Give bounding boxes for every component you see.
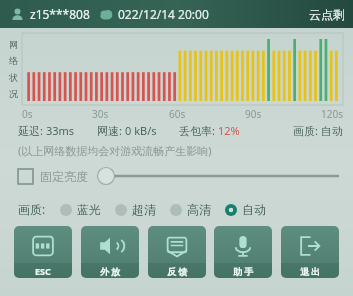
button[interactable]: 固定亮度 bbox=[18, 169, 88, 184]
staticText: 0 kB/s bbox=[125, 123, 157, 138]
staticText: 固定亮度 bbox=[40, 169, 88, 184]
staticText: 33ms bbox=[46, 123, 75, 138]
staticText: 0s bbox=[22, 107, 33, 121]
staticText: 延迟: bbox=[18, 123, 46, 138]
button[interactable]: 高清 bbox=[170, 202, 211, 217]
staticText: 络 bbox=[9, 55, 18, 66]
staticText: 画质: bbox=[293, 123, 321, 138]
staticText: 90s bbox=[245, 107, 262, 121]
staticText: 网 bbox=[9, 39, 18, 50]
staticText: ESC bbox=[35, 265, 51, 277]
staticText: 60s bbox=[169, 107, 186, 121]
staticText: 状 bbox=[9, 72, 18, 83]
staticText: 网速: bbox=[97, 123, 125, 138]
staticText: 蓝光 bbox=[77, 202, 101, 217]
button[interactable]: ESC bbox=[14, 226, 72, 278]
staticText: (以上网络数据均会对游戏流畅产生影响) bbox=[18, 143, 212, 158]
staticText: 助 手 bbox=[233, 265, 254, 277]
button[interactable]: 蓝光 bbox=[60, 202, 101, 217]
button[interactable]: 外 放 bbox=[81, 226, 139, 278]
staticText: 外 放 bbox=[100, 265, 121, 277]
staticText: 022/12/14 20:00 bbox=[118, 6, 209, 22]
staticText: 高清 bbox=[187, 202, 211, 217]
staticText: 况 bbox=[9, 88, 18, 99]
staticText: 画质: bbox=[18, 201, 46, 217]
staticText: 反 馈 bbox=[167, 265, 188, 277]
staticText: 自动 bbox=[321, 124, 343, 138]
staticText: 退 出 bbox=[300, 265, 321, 277]
staticText: 丢包率: bbox=[179, 123, 218, 138]
staticText: 30s bbox=[92, 107, 109, 121]
staticText: z15***808 bbox=[30, 6, 90, 22]
staticText: 12% bbox=[218, 123, 240, 138]
button[interactable] bbox=[96, 166, 339, 186]
staticText: 超清 bbox=[132, 202, 156, 217]
button[interactable]: 自动 bbox=[225, 202, 266, 217]
button[interactable]: 退 出 bbox=[281, 226, 339, 278]
staticText: 自动 bbox=[242, 202, 266, 217]
button[interactable]: 反 馈 bbox=[148, 226, 206, 278]
button[interactable]: 助 手 bbox=[214, 226, 272, 278]
staticText: 120s bbox=[321, 107, 343, 121]
staticText: 云点剩 bbox=[309, 7, 345, 22]
button[interactable]: 超清 bbox=[115, 202, 156, 217]
